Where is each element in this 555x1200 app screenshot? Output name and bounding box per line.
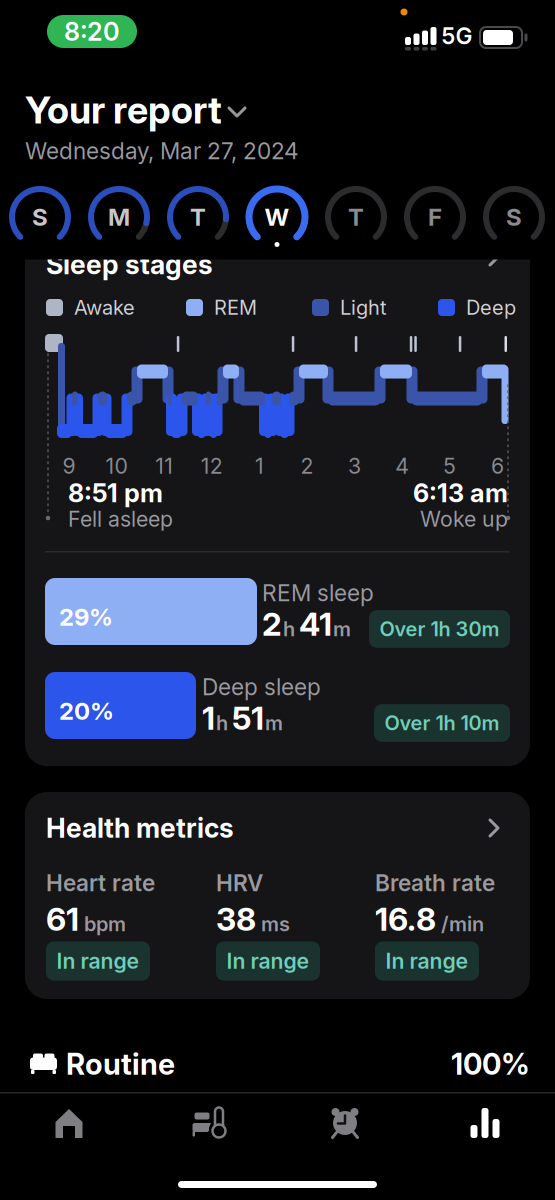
staticText: Fell asleep bbox=[68, 506, 173, 532]
staticText: W bbox=[264, 203, 289, 231]
staticText: Wednesday, Mar 27, 2024 bbox=[25, 138, 299, 164]
button[interactable]: Health metrics bbox=[25, 806, 530, 850]
button[interactable]: Sleep bbox=[148, 1094, 268, 1154]
staticText: Light bbox=[340, 296, 387, 319]
staticText: In range bbox=[385, 948, 468, 974]
staticText: Over 1h 10m bbox=[384, 711, 499, 735]
staticText: ms bbox=[261, 912, 290, 936]
staticText: F bbox=[428, 203, 442, 231]
staticText: bpm bbox=[84, 912, 126, 936]
staticText: 2 bbox=[300, 453, 313, 479]
staticText: m bbox=[265, 711, 283, 735]
staticText: 1 bbox=[202, 699, 215, 737]
staticText: 61 bbox=[46, 900, 79, 938]
staticText: T bbox=[348, 203, 364, 231]
staticText: Deep sleep bbox=[202, 674, 321, 700]
staticText: 41 bbox=[299, 605, 332, 643]
button[interactable]: Alarm bbox=[286, 1094, 406, 1154]
staticText: M bbox=[108, 203, 130, 231]
staticText: 4 bbox=[395, 453, 409, 479]
staticText: T bbox=[190, 203, 206, 231]
staticText: Heart rate bbox=[46, 870, 155, 896]
staticText: h bbox=[216, 711, 228, 735]
staticText: 11 bbox=[155, 453, 173, 479]
staticText: HRV bbox=[216, 870, 263, 896]
staticText: 20% bbox=[59, 697, 114, 725]
staticText: 6:13 am bbox=[413, 478, 508, 508]
button[interactable]: Sleep stages bbox=[25, 242, 530, 286]
button[interactable]: Routine bbox=[0, 1040, 555, 1088]
staticText: 16.8 bbox=[375, 900, 436, 938]
staticText: Health metrics bbox=[46, 812, 234, 844]
staticText: 29% bbox=[59, 603, 113, 631]
staticText: 100% bbox=[451, 1047, 530, 1081]
staticText: 38 bbox=[216, 900, 256, 938]
staticText: 5G bbox=[441, 23, 472, 49]
button[interactable]: M bbox=[88, 188, 150, 250]
staticText: Awake bbox=[74, 296, 135, 319]
staticText: 8:51 pm bbox=[68, 478, 163, 508]
staticText: 6 bbox=[491, 453, 504, 479]
staticText: Breath rate bbox=[375, 870, 495, 896]
staticText: /min bbox=[441, 912, 484, 936]
button[interactable]: F bbox=[404, 188, 466, 250]
staticText: Sleep stages bbox=[46, 249, 213, 280]
button[interactable]: Reports bbox=[425, 1094, 545, 1154]
staticText: m bbox=[333, 617, 351, 641]
button[interactable]: Your report bbox=[15, 86, 275, 134]
staticText: REM sleep bbox=[262, 580, 374, 606]
staticText: 1 bbox=[255, 453, 264, 479]
button[interactable]: Home bbox=[9, 1094, 129, 1154]
staticText: In range bbox=[56, 948, 139, 974]
button[interactable]: S bbox=[9, 188, 71, 250]
staticText: Your report bbox=[25, 88, 222, 132]
staticText: In range bbox=[226, 948, 309, 974]
staticText: h bbox=[283, 617, 295, 641]
staticText: 8:20 bbox=[64, 17, 120, 46]
staticText: S bbox=[506, 203, 522, 231]
staticText: 5 bbox=[443, 453, 456, 479]
button[interactable]: T bbox=[325, 188, 387, 250]
staticText: Routine bbox=[66, 1047, 175, 1081]
staticText: 12 bbox=[201, 453, 223, 479]
staticText: Deep bbox=[466, 296, 516, 319]
staticText: 2 bbox=[262, 605, 282, 643]
staticText: REM bbox=[214, 296, 257, 319]
staticText: S bbox=[32, 203, 48, 231]
staticText: 9 bbox=[62, 453, 75, 479]
staticText: Woke up bbox=[420, 506, 508, 532]
staticText: 51 bbox=[232, 699, 264, 737]
button[interactable]: T bbox=[167, 188, 229, 250]
staticText: Over 1h 30m bbox=[379, 617, 499, 641]
button[interactable]: S bbox=[483, 188, 545, 250]
staticText: 10 bbox=[106, 453, 128, 479]
button[interactable]: W bbox=[246, 188, 308, 250]
staticText: 3 bbox=[348, 453, 361, 479]
button[interactable]: Return to timer bbox=[47, 15, 137, 48]
